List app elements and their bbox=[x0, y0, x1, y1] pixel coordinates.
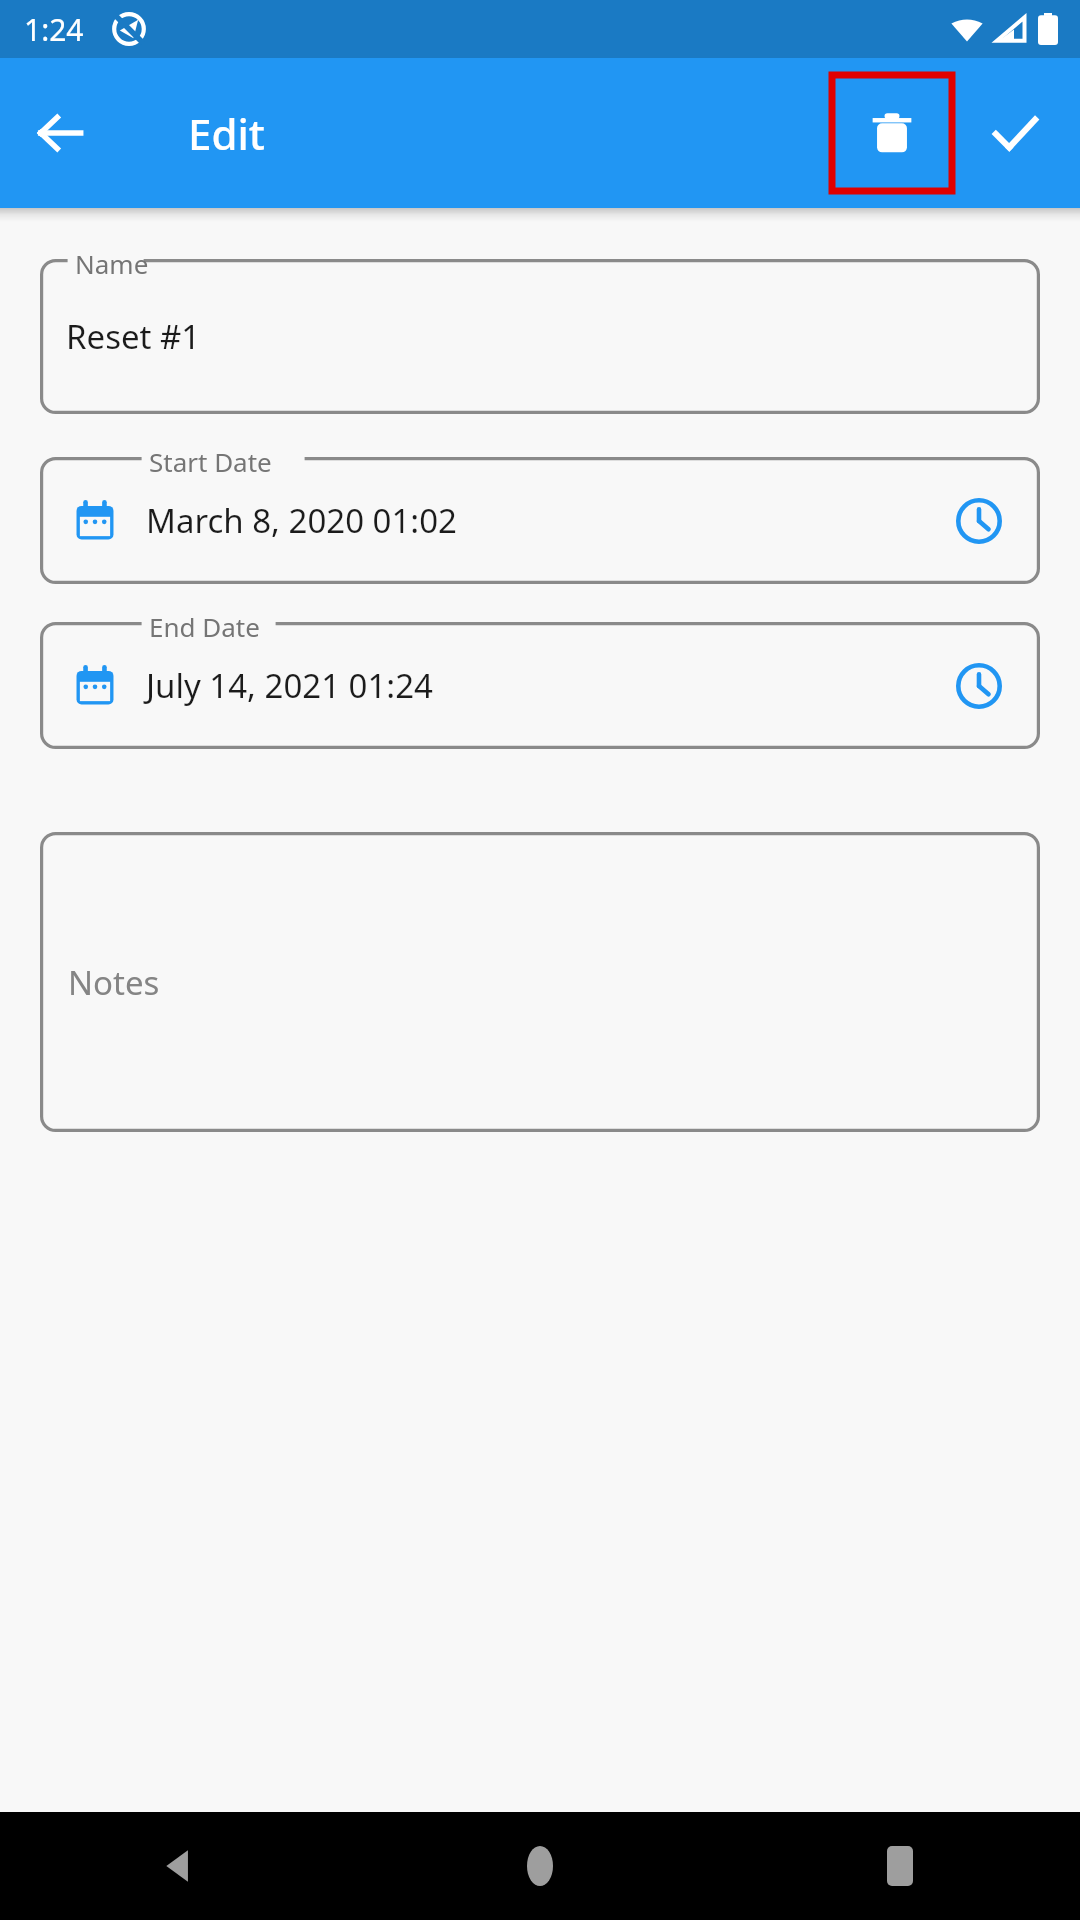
staticText: 1:24 bbox=[24, 9, 84, 50]
button[interactable]: Home bbox=[360, 1812, 720, 1920]
staticText: Start Date bbox=[149, 444, 272, 479]
button[interactable]: Notes bbox=[40, 832, 1040, 1132]
button[interactable]: Back bbox=[0, 1812, 360, 1920]
button[interactable]: Start Date bbox=[40, 457, 1040, 584]
staticText: July 14, 2021 01:24 bbox=[146, 663, 433, 708]
button[interactable]: Save bbox=[972, 90, 1058, 176]
staticText: Notes bbox=[68, 960, 160, 1005]
button[interactable]: Name bbox=[40, 259, 1040, 414]
button[interactable]: End Date bbox=[40, 622, 1040, 749]
staticText: Name bbox=[75, 246, 149, 281]
staticText: Reset #1 bbox=[66, 314, 201, 359]
button[interactable]: Pick time bbox=[948, 655, 1010, 717]
staticText: Edit bbox=[188, 105, 265, 162]
button[interactable]: Pick time bbox=[948, 490, 1010, 552]
button[interactable]: Back bbox=[24, 97, 96, 169]
staticText: March 8, 2020 01:02 bbox=[146, 498, 457, 543]
staticText: End Date bbox=[149, 609, 260, 644]
button[interactable]: Delete bbox=[832, 75, 952, 191]
button[interactable]: Recent apps bbox=[720, 1812, 1080, 1920]
